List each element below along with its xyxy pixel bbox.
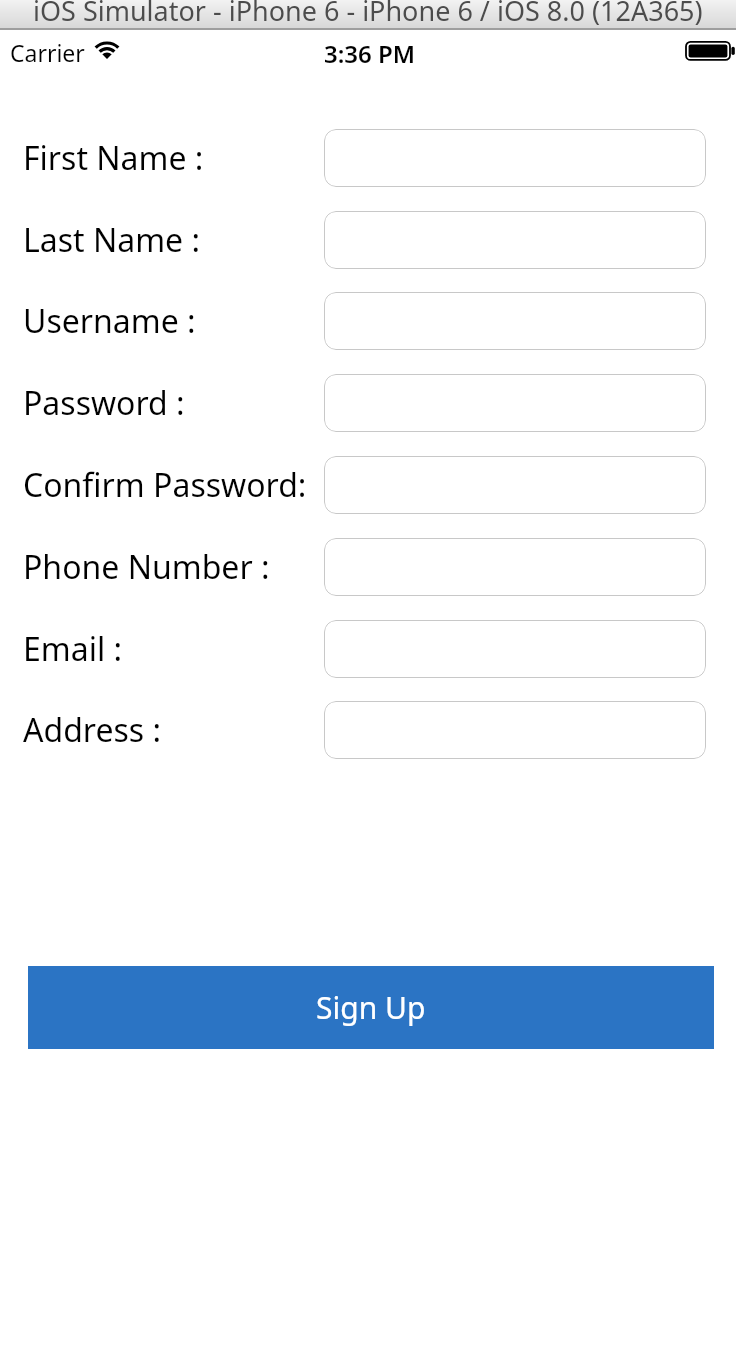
staticText: First Name :	[23, 136, 204, 180]
staticText: Address :	[23, 708, 161, 752]
staticText: Username :	[23, 299, 196, 343]
button[interactable]	[324, 620, 706, 678]
staticText: 3:36 PM	[324, 37, 416, 70]
staticText: Last Name :	[23, 218, 201, 262]
staticText: iOS Simulator - iPhone 6 - iPhone 6 / iO…	[33, 0, 703, 29]
button[interactable]	[324, 374, 706, 432]
staticText: Sign Up	[316, 987, 426, 1028]
button[interactable]: Sign Up	[28, 966, 714, 1049]
button[interactable]	[324, 211, 706, 269]
button[interactable]	[324, 701, 706, 759]
button[interactable]	[324, 129, 706, 187]
staticText: Phone Number :	[23, 545, 270, 589]
staticText: Email :	[23, 627, 123, 671]
button[interactable]	[324, 456, 706, 514]
button[interactable]	[324, 292, 706, 350]
button[interactable]	[324, 538, 706, 596]
staticText: Carrier	[10, 37, 85, 68]
staticText: Confirm Password:	[23, 463, 307, 507]
staticText: Password :	[23, 381, 185, 425]
